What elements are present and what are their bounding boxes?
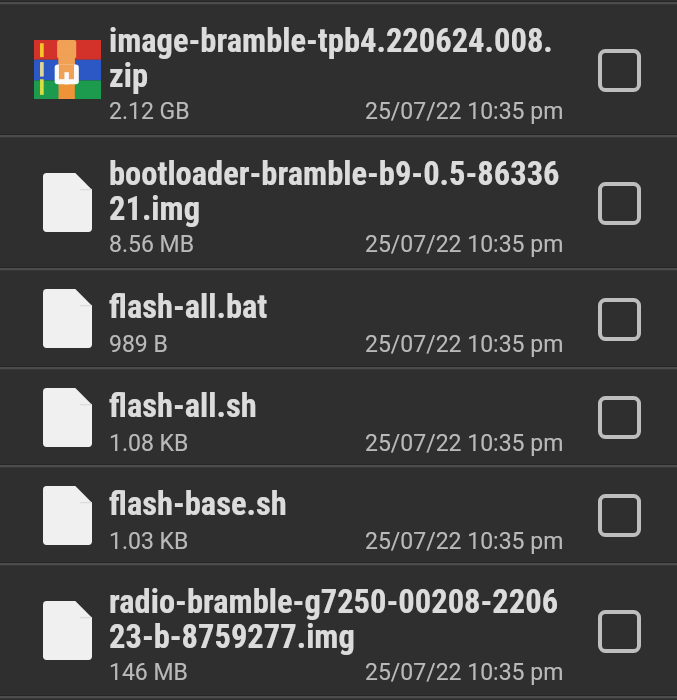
staticText: 25/07/22 10:35 pm (365, 231, 564, 258)
staticText: 1.03 KB (109, 528, 189, 555)
staticText: 25/07/22 10:35 pm (365, 98, 564, 125)
button[interactable]: flash-all.bat (0, 271, 677, 366)
button[interactable]: radio-bramble-g7250-00208-2206 (0, 566, 677, 695)
button[interactable]: Select ${item.name} (590, 486, 648, 544)
staticText: 25/07/22 10:35 pm (365, 659, 564, 686)
staticText: flash-all.sh (109, 390, 257, 425)
staticText: 25/07/22 10:35 pm (365, 528, 564, 555)
button[interactable]: Select ${item.name} (590, 290, 648, 348)
button[interactable]: Select ${item.name} (590, 174, 648, 232)
staticText: radio-bramble-g7250-00208-2206 (109, 586, 559, 621)
staticText: flash-base.sh (109, 488, 287, 523)
staticText: zip (109, 60, 149, 95)
staticText: 2.12 GB (109, 98, 190, 125)
button[interactable]: Select ${item.name} (590, 41, 648, 99)
button[interactable]: flash-base.sh (0, 468, 677, 562)
staticText: 25/07/22 10:35 pm (365, 430, 564, 457)
staticText: 23-b-8759277.img (109, 621, 355, 656)
button[interactable]: image-bramble-tpb4.220624.008. (0, 5, 677, 134)
staticText: bootloader-bramble-b9-0.5-86336 (109, 158, 560, 193)
staticText: flash-all.bat (109, 291, 268, 326)
button[interactable]: flash-all.sh (0, 370, 677, 464)
staticText: 146 MB (109, 659, 188, 686)
staticText: image-bramble-tpb4.220624.008. (109, 25, 553, 60)
staticText: 21.img (109, 193, 201, 228)
button[interactable]: Select ${item.name} (590, 388, 648, 446)
staticText: 1.08 KB (109, 430, 189, 457)
staticText: 989 B (109, 331, 168, 358)
button[interactable]: Select ${item.name} (590, 602, 648, 660)
staticText: 25/07/22 10:35 pm (365, 331, 564, 358)
button[interactable]: bootloader-bramble-b9-0.5-86336 (0, 138, 677, 267)
staticText: 8.56 MB (109, 231, 194, 258)
